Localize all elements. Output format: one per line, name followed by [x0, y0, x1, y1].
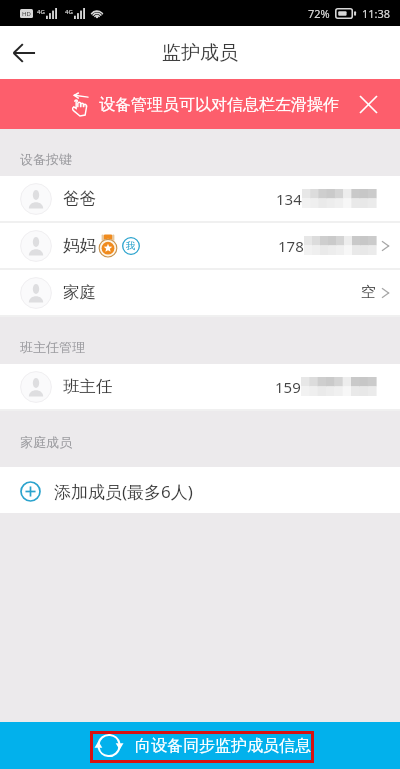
staticText: 空: [361, 283, 376, 302]
staticText: 添加成员(最多6人): [54, 480, 193, 503]
staticText: 班主任管理: [20, 339, 85, 355]
staticText: 159: [275, 377, 301, 397]
button[interactable]: 家庭: [0, 270, 400, 317]
button[interactable]: 添加成员(最多6人): [0, 467, 400, 513]
staticText: 监护成员: [162, 41, 238, 65]
staticText: 4G: [65, 8, 73, 16]
button[interactable]: 向设备同步监护成员信息: [0, 722, 400, 769]
staticText: 134: [276, 189, 302, 209]
button[interactable]: 班主任: [0, 364, 400, 411]
staticText: 设备管理员可以对信息栏左滑操作: [99, 95, 339, 115]
button[interactable]: 妈妈: [0, 223, 400, 270]
staticText: HD: [22, 10, 31, 18]
staticText: 我: [126, 240, 136, 252]
staticText: 妈妈: [63, 235, 96, 256]
staticText: 11:38: [362, 6, 391, 21]
staticText: 72%: [308, 6, 330, 21]
staticText: 家庭: [63, 282, 96, 303]
staticText: 爸爸: [63, 188, 96, 209]
staticText: 178: [278, 236, 304, 256]
button[interactable]: Back: [0, 29, 48, 77]
staticText: 设备按键: [20, 151, 72, 167]
staticText: 向设备同步监护成员信息: [135, 736, 311, 756]
button[interactable]: Close banner: [348, 84, 388, 124]
staticText: 班主任: [63, 376, 113, 397]
button[interactable]: 爸爸: [0, 176, 400, 223]
staticText: 家庭成员: [20, 434, 72, 450]
staticText: 4G: [37, 8, 45, 16]
